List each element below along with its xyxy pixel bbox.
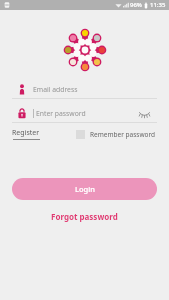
- button[interactable]: Remember password: [76, 130, 156, 139]
- staticText: 11:35: [150, 1, 166, 9]
- staticText: Forgot password: [51, 211, 118, 222]
- button[interactable]: Login: [12, 178, 157, 200]
- button[interactable]: Enter password: [12, 105, 157, 123]
- staticText: Enter password: [36, 109, 86, 118]
- button[interactable]: Register: [12, 128, 40, 140]
- staticText: 96%: [130, 1, 142, 9]
- button[interactable]: Forgot password: [48, 208, 121, 225]
- button[interactable]: Email address: [12, 81, 157, 99]
- other: Show password: [139, 110, 150, 118]
- staticText: Register: [12, 128, 40, 138]
- staticText: Email address: [33, 85, 78, 94]
- staticText: Remember password: [90, 130, 156, 139]
- staticText: Login: [75, 184, 95, 194]
